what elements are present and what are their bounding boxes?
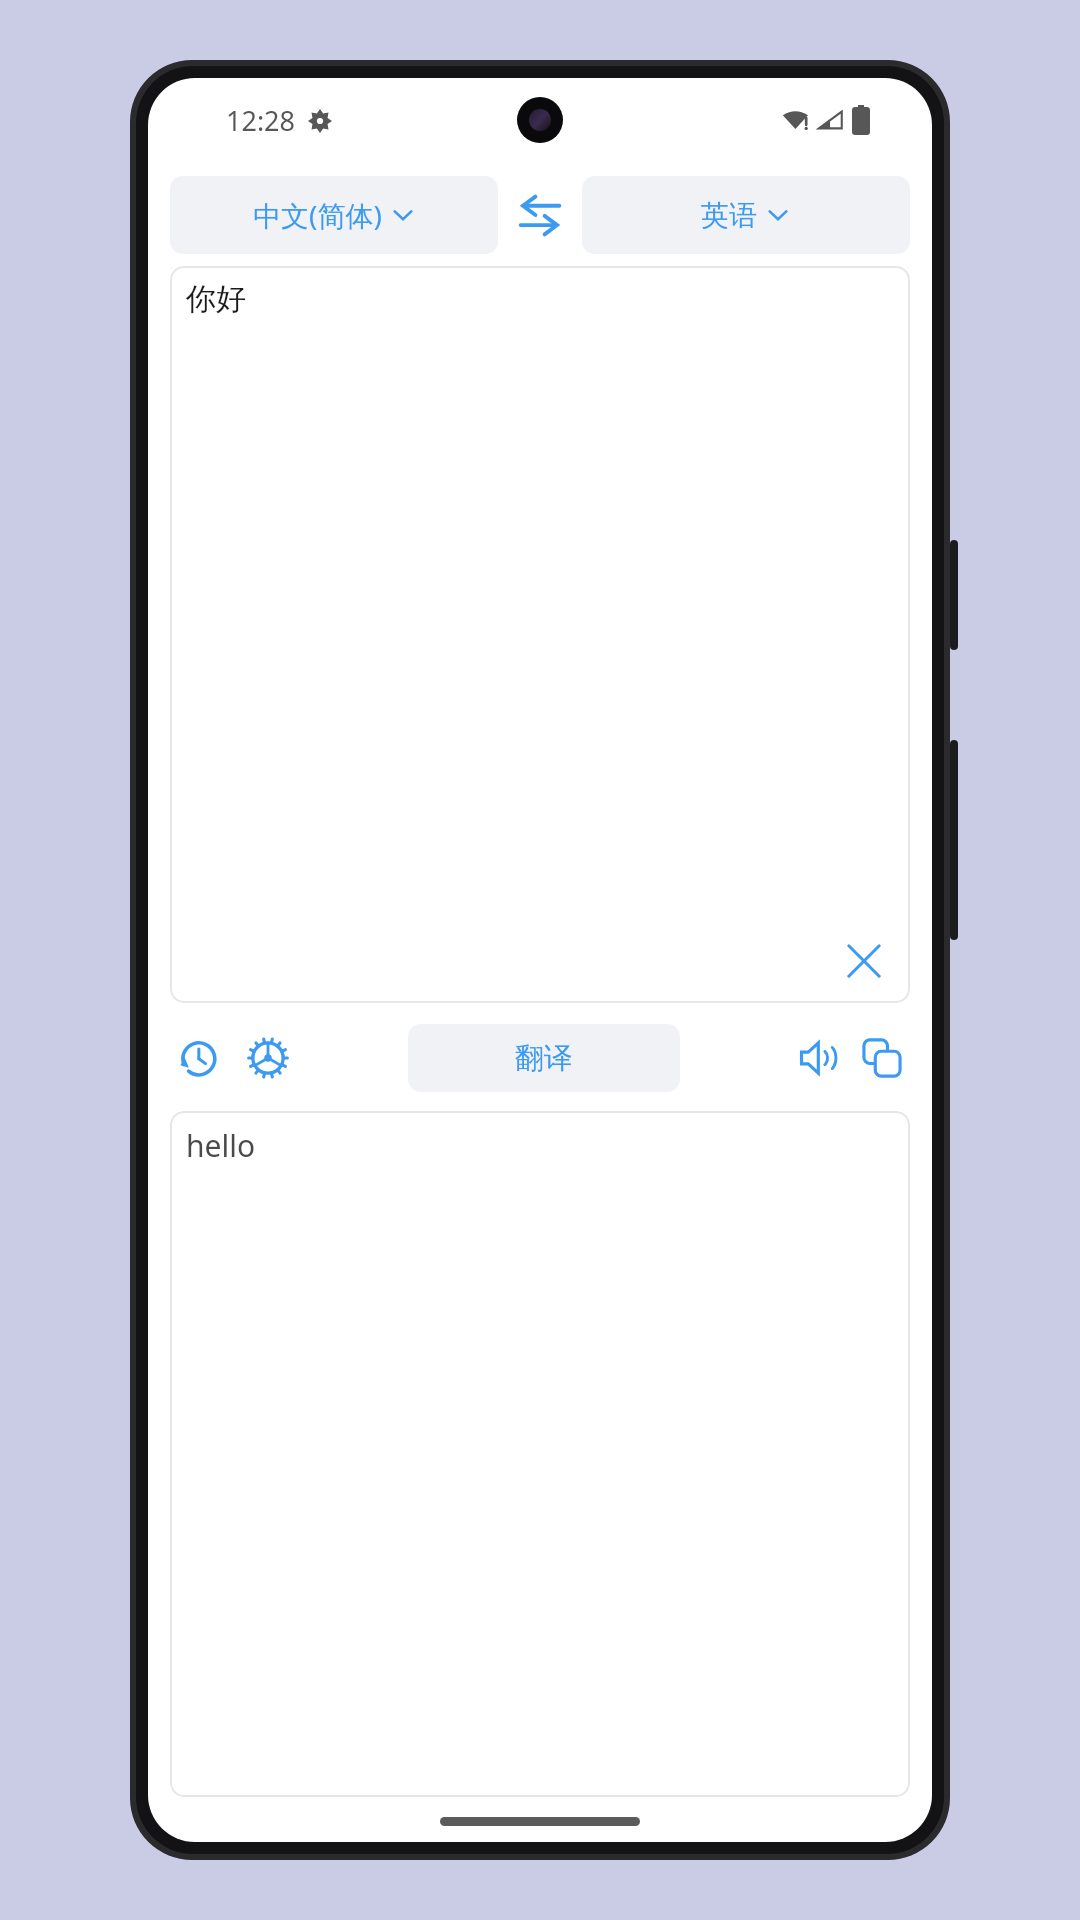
button[interactable]: hello	[170, 1111, 910, 1797]
button[interactable]: 英语	[582, 176, 910, 254]
button[interactable]: Speak	[792, 1030, 848, 1086]
button[interactable]: Settings	[240, 1030, 296, 1086]
button[interactable]: Clear text	[836, 933, 892, 989]
staticText: 你好	[186, 280, 246, 318]
button[interactable]: History	[170, 1030, 226, 1086]
button[interactable]: 翻译	[408, 1024, 680, 1092]
button[interactable]: Copy	[854, 1030, 910, 1086]
staticText: 翻译	[515, 1040, 573, 1077]
button[interactable]: 你好	[170, 266, 910, 1003]
staticText: hello	[186, 1125, 256, 1166]
button[interactable]: Swap languages	[498, 176, 582, 254]
staticText: 12:28	[226, 102, 296, 139]
staticText: 英语	[701, 198, 757, 233]
staticText: 中文(简体)	[253, 196, 382, 234]
button[interactable]: 中文(简体)	[170, 176, 498, 254]
